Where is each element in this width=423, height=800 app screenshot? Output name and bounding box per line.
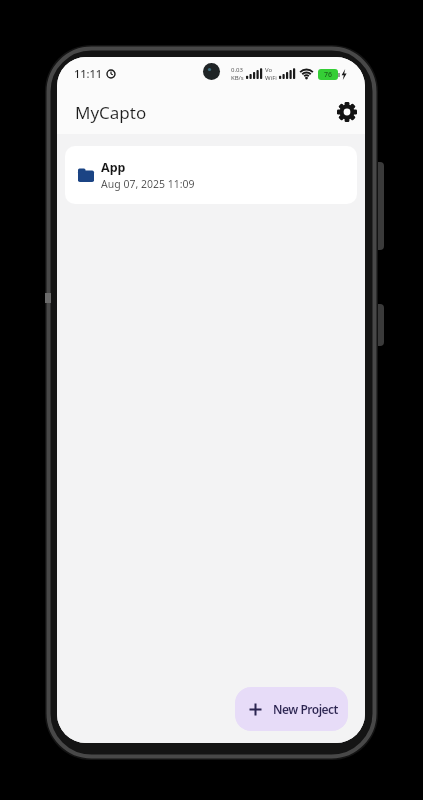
- button[interactable]: New Project: [235, 687, 348, 731]
- staticText: 0.03: [231, 66, 243, 74]
- staticText: MyCapto: [75, 101, 147, 124]
- staticText: 76: [324, 70, 333, 80]
- staticText: Aug 07, 2025 11:09: [101, 177, 195, 191]
- staticText: Vo: [265, 66, 273, 74]
- button[interactable]: App: [65, 146, 357, 204]
- staticText: KB/s: [231, 74, 244, 82]
- staticText: WiFi: [265, 74, 277, 82]
- staticText: 11:11: [74, 66, 103, 81]
- staticText: App: [101, 159, 126, 176]
- button[interactable]: [333, 98, 361, 126]
- staticText: New Project: [273, 701, 338, 717]
